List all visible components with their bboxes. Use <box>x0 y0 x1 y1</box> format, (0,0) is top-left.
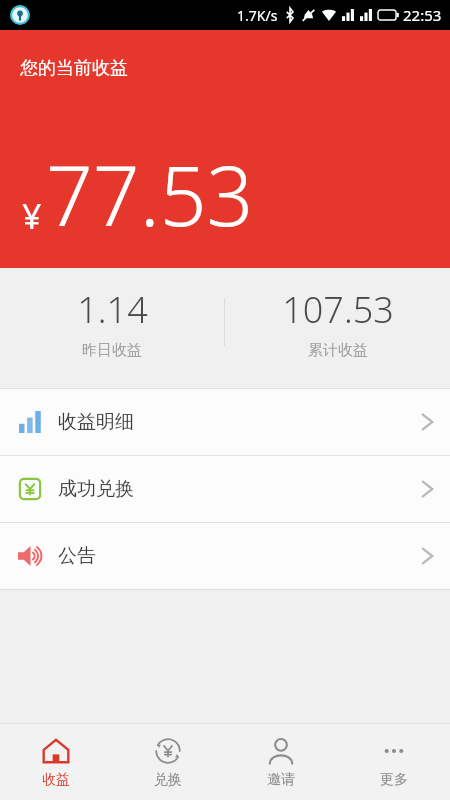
staticText: 昨日收益 <box>82 341 142 360</box>
other: 更多 <box>380 737 408 765</box>
button[interactable]: 公告 <box>0 523 450 589</box>
staticText: 收益明细 <box>58 410 134 434</box>
staticText: 公告 <box>58 544 96 568</box>
staticText: 累计收益 <box>308 341 368 360</box>
other: 兑换 <box>154 737 182 765</box>
staticText: 您的当前收益 <box>20 57 128 80</box>
staticText: 邀请 <box>267 771 295 789</box>
staticText: 107.53 <box>282 285 394 334</box>
other: 收益 <box>42 737 70 765</box>
staticText: 成功兑换 <box>58 477 134 501</box>
staticText: 收益 <box>42 771 70 789</box>
staticText: 更多 <box>380 771 408 789</box>
button[interactable]: 收益 <box>0 724 112 800</box>
button[interactable]: 邀请 <box>224 724 337 800</box>
button[interactable]: 更多 <box>337 724 450 800</box>
staticText: ¥ <box>22 193 42 239</box>
staticText: 兑换 <box>154 771 182 789</box>
button[interactable]: 成功兑换 <box>0 456 450 522</box>
button[interactable]: 兑换 <box>112 724 224 800</box>
staticText: 22:53 <box>403 5 442 25</box>
staticText: 77.53 <box>46 138 254 250</box>
button[interactable]: 收益明细 <box>0 389 450 455</box>
other: 邀请 <box>267 737 295 765</box>
staticText: 1.7K/s <box>237 6 278 25</box>
staticText: 1.14 <box>77 285 148 334</box>
